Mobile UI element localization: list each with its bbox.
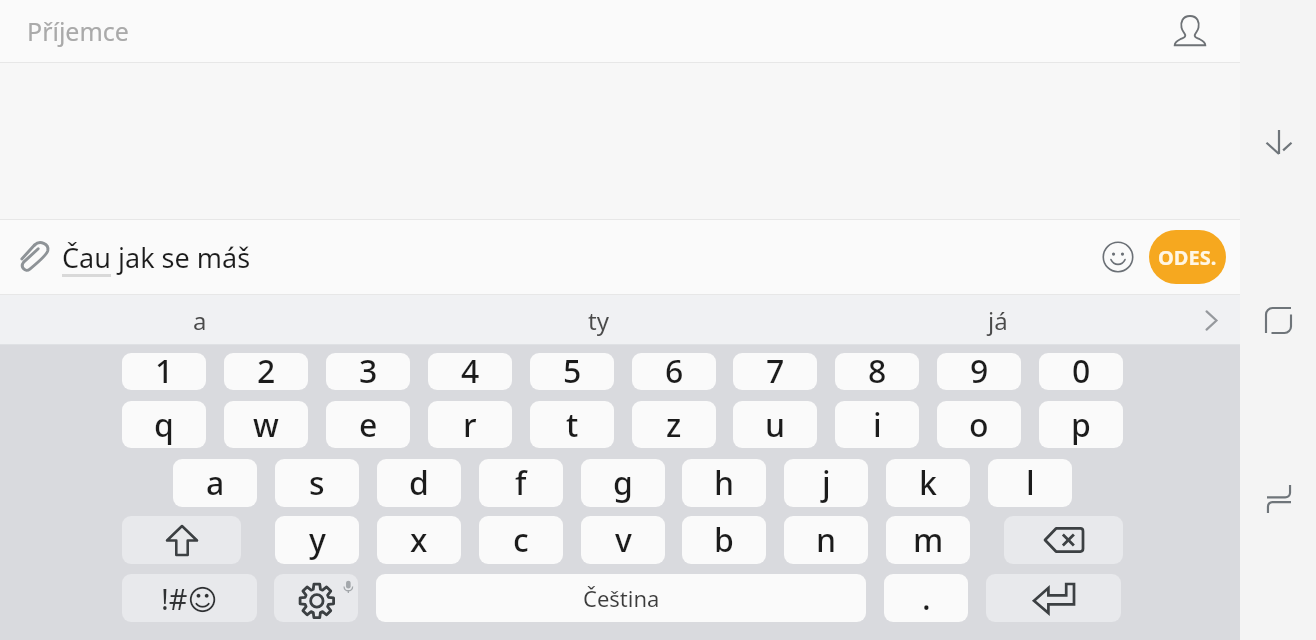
button[interactable]: s — [275, 459, 359, 507]
button[interactable]: 1 — [122, 353, 206, 390]
button[interactable]: u — [733, 401, 817, 448]
button[interactable]: v — [581, 516, 665, 564]
button[interactable]: Attach — [10, 233, 58, 281]
button[interactable]: 7 — [733, 353, 817, 390]
button[interactable]: 8 — [835, 353, 919, 390]
staticText: Příjemce — [27, 14, 129, 48]
button[interactable]: 5 — [530, 353, 614, 390]
button[interactable]: 0 — [1039, 353, 1123, 390]
staticText: o — [969, 403, 989, 447]
button[interactable]: i — [835, 401, 919, 448]
staticText: Čeština — [583, 583, 660, 613]
button[interactable]: w — [224, 401, 308, 448]
button[interactable]: Čeština — [376, 574, 866, 622]
staticText: i — [873, 403, 882, 447]
staticText: jak se máš — [111, 239, 251, 276]
staticText: z — [666, 403, 682, 447]
staticText: . — [922, 576, 931, 620]
button[interactable]: x — [377, 516, 461, 564]
button[interactable]: p — [1039, 401, 1123, 448]
button[interactable]: More suggestions — [1197, 295, 1240, 345]
staticText: g — [613, 461, 633, 505]
button[interactable]: . — [884, 574, 968, 622]
button[interactable]: 4 — [428, 353, 512, 390]
button[interactable]: h — [682, 459, 766, 507]
staticText: ty — [588, 304, 609, 337]
button[interactable]: Shift — [122, 516, 241, 564]
staticText: x — [410, 518, 428, 562]
staticText: l — [1026, 461, 1035, 505]
button[interactable]: Home — [1241, 261, 1316, 379]
button[interactable]: ODES. — [1149, 230, 1226, 284]
staticText: 4 — [461, 353, 480, 386]
button[interactable]: c — [479, 516, 563, 564]
button[interactable]: já — [798, 295, 1197, 345]
staticText: n — [816, 518, 837, 562]
button[interactable]: e — [326, 401, 410, 448]
staticText: b — [714, 518, 734, 562]
button[interactable]: m — [886, 516, 970, 564]
button[interactable]: Settings — [274, 574, 358, 622]
button[interactable]: Back — [1241, 83, 1316, 201]
button[interactable]: b — [682, 516, 766, 564]
button[interactable]: o — [937, 401, 1021, 448]
staticText: v — [615, 518, 632, 562]
staticText: f — [515, 461, 527, 505]
staticText: 6 — [665, 353, 684, 386]
staticText: d — [409, 461, 429, 505]
staticText: 0 — [1072, 353, 1091, 386]
staticText: c — [513, 518, 529, 562]
button[interactable]: n — [784, 516, 868, 564]
button[interactable]: Contacts — [1166, 7, 1214, 55]
staticText: e — [359, 403, 378, 447]
button[interactable]: z — [632, 401, 716, 448]
staticText: 2 — [257, 353, 276, 386]
button[interactable]: Emoji — [1094, 233, 1142, 281]
button[interactable]: j — [784, 459, 868, 507]
button[interactable]: Backspace — [1004, 516, 1123, 564]
staticText: já — [988, 304, 1008, 337]
button[interactable]: 2 — [224, 353, 308, 390]
staticText: ODES. — [1158, 244, 1217, 271]
button[interactable]: 9 — [937, 353, 1021, 390]
staticText: w — [253, 403, 279, 447]
staticText: k — [919, 461, 937, 505]
staticText: q — [154, 403, 174, 447]
staticText: r — [463, 403, 477, 447]
staticText: 1 — [155, 353, 174, 386]
button[interactable]: l — [988, 459, 1072, 507]
staticText: Čau — [62, 239, 111, 276]
staticText: m — [913, 518, 944, 562]
button[interactable]: Symbols — [122, 574, 257, 622]
button[interactable]: Recents — [1241, 440, 1316, 558]
button[interactable]: a — [0, 295, 399, 345]
staticText: j — [822, 461, 831, 505]
staticText: 8 — [868, 353, 887, 386]
staticText: y — [309, 518, 326, 562]
button[interactable]: d — [377, 459, 461, 507]
staticText: p — [1071, 403, 1091, 447]
button[interactable]: k — [886, 459, 970, 507]
button[interactable]: f — [479, 459, 563, 507]
staticText: h — [714, 461, 735, 505]
button[interactable]: Enter — [986, 574, 1121, 622]
button[interactable]: r — [428, 401, 512, 448]
button[interactable]: 3 — [326, 353, 410, 390]
staticText: 5 — [563, 353, 582, 386]
staticText: 9 — [970, 353, 989, 386]
button[interactable]: a — [173, 459, 257, 507]
staticText: 3 — [359, 353, 378, 386]
staticText: a — [193, 304, 207, 337]
staticText: !#☺ — [161, 579, 218, 618]
button[interactable]: 6 — [632, 353, 716, 390]
button[interactable]: q — [122, 401, 206, 448]
button[interactable]: ty — [399, 295, 798, 345]
staticText: u — [765, 403, 786, 447]
button[interactable]: g — [581, 459, 665, 507]
staticText: s — [309, 461, 325, 505]
button[interactable]: t — [530, 401, 614, 448]
staticText: t — [566, 403, 579, 447]
staticText: a — [206, 461, 225, 505]
staticText: 7 — [766, 353, 785, 386]
button[interactable]: y — [275, 516, 359, 564]
